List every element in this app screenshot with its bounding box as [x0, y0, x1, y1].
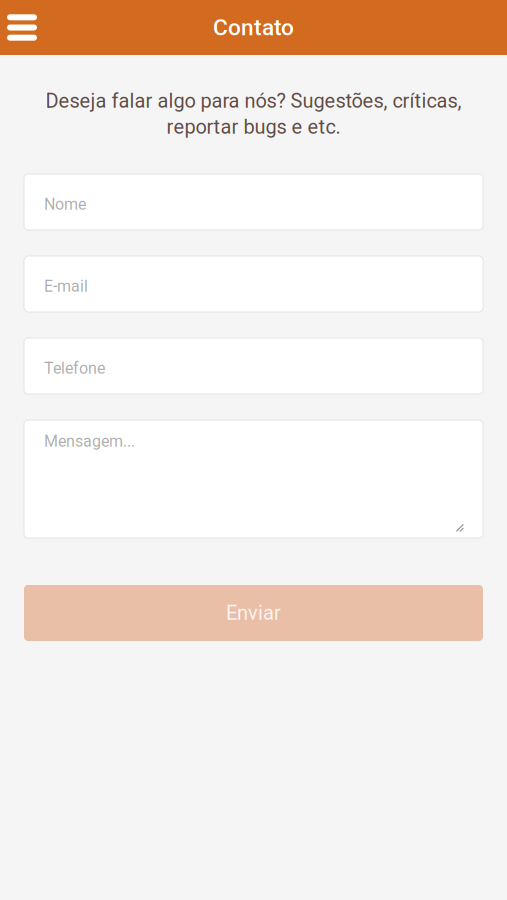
staticText: Deseja falar algo para nós? Sugestões, c…: [45, 89, 461, 113]
staticText: reportar bugs e etc.: [166, 115, 340, 139]
staticText: Contato: [213, 14, 294, 41]
button[interactable]: E-mail: [24, 256, 483, 312]
staticText: Nome: [44, 195, 86, 214]
staticText: Mensagem...: [44, 432, 135, 451]
button[interactable]: Mensagem...: [24, 420, 483, 538]
button[interactable]: Enviar: [24, 585, 483, 641]
staticText: Telefone: [44, 359, 105, 378]
button[interactable]: Menu: [0, 0, 49, 55]
staticText: Enviar: [226, 601, 281, 625]
staticText: E-mail: [44, 277, 88, 296]
button[interactable]: Nome: [24, 174, 483, 230]
button[interactable]: Telefone: [24, 338, 483, 394]
